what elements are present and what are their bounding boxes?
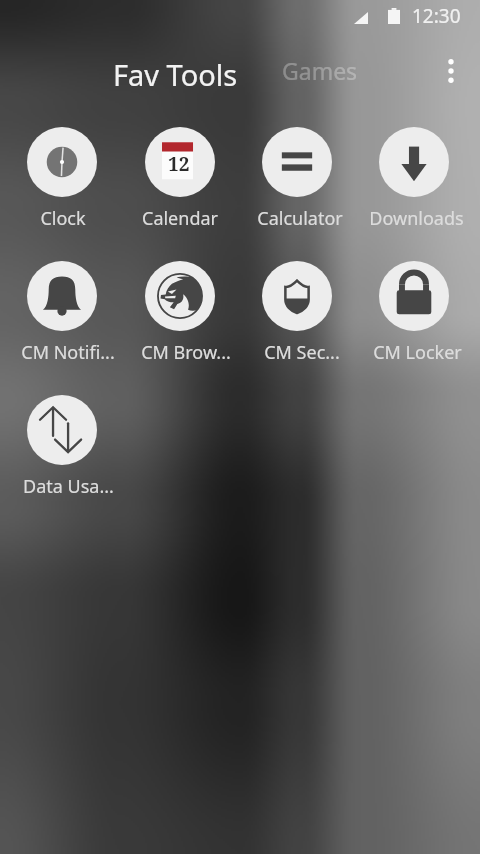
staticText: 12:30 (412, 3, 461, 29)
button[interactable]: Fav Tools (103, 48, 248, 101)
button[interactable]: CM Brow... (121, 261, 238, 395)
button[interactable]: Downloads (355, 127, 472, 261)
button[interactable]: Games (272, 48, 368, 93)
button[interactable]: 12 (121, 127, 238, 261)
button[interactable]: More options (428, 48, 474, 94)
staticText: Downloads (369, 206, 464, 231)
staticText: CM Sec... (264, 340, 340, 365)
button[interactable]: CM Notifi... (3, 261, 121, 395)
staticText: CM Locker (373, 340, 462, 365)
staticText: 12 (168, 151, 190, 177)
staticText: Data Usa... (23, 474, 114, 499)
staticText: Fav Tools (113, 55, 238, 94)
button[interactable]: CM Locker (355, 261, 472, 395)
button[interactable]: CM Sec... (238, 261, 355, 395)
button[interactable]: Calculator (238, 127, 355, 261)
staticText: CM Notifi... (21, 340, 115, 365)
button[interactable]: Data Usa... (3, 395, 121, 529)
staticText: Clock (40, 206, 86, 231)
staticText: CM Brow... (141, 340, 231, 365)
staticText: Calculator (257, 206, 343, 231)
staticText: Games (282, 55, 358, 86)
button[interactable]: Clock (3, 127, 121, 261)
staticText: Calendar (142, 206, 218, 231)
